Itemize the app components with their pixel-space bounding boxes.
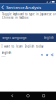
staticText: English — [44, 36, 54, 39]
button[interactable]: to — [12, 45, 15, 48]
button[interactable]: English — [25, 45, 35, 48]
button[interactable]: Recent apps — [40, 93, 47, 99]
staticText: Target Language — [2, 36, 27, 39]
staticText: Sentence Analysis — [6, 5, 41, 10]
staticText: today — [36, 45, 43, 48]
button[interactable]: Home — [25, 92, 31, 99]
button[interactable]: learn — [16, 45, 23, 48]
button[interactable]: Back — [9, 92, 15, 99]
staticText: English — [2, 51, 12, 54]
staticText: to — [12, 45, 15, 48]
staticText: Toggle keyboard to type in Japanese or C… — [2, 12, 56, 19]
button[interactable]: want — [4, 45, 10, 48]
staticText: want — [4, 45, 10, 48]
button[interactable]: Back — [0, 4, 6, 11]
button[interactable]: Share word — [51, 54, 53, 56]
button[interactable]: Play pronunciation — [41, 54, 43, 56]
staticText: noun — [2, 55, 6, 57]
staticText: English — [25, 45, 35, 48]
button[interactable]: today — [36, 45, 43, 48]
button[interactable]: Save word — [46, 54, 48, 56]
staticText: learn — [16, 45, 23, 48]
